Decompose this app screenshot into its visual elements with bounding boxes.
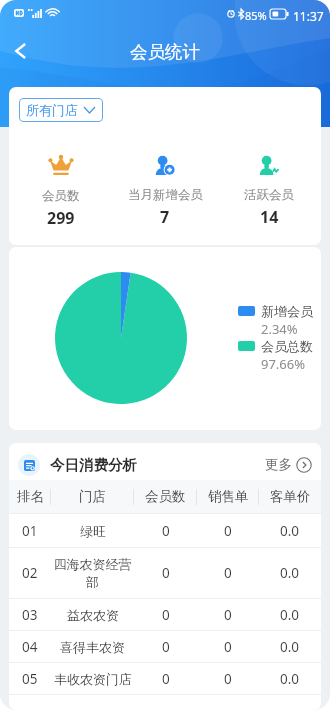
staticText: 2.34% — [261, 320, 298, 338]
staticText: 门店 — [79, 488, 106, 505]
button[interactable]: 当月新增会员 — [113, 155, 217, 228]
staticText: 喜得丰农资 — [60, 639, 125, 655]
staticText: 0 — [162, 606, 170, 624]
staticText: 04 — [22, 638, 38, 656]
button[interactable]: 04 — [9, 631, 321, 662]
staticText: 0 — [162, 670, 170, 688]
staticText: 0.0 — [280, 564, 300, 582]
button[interactable]: 会员数 — [9, 155, 113, 229]
staticText: 活跃会员 — [244, 187, 294, 203]
staticText: 0.0 — [280, 522, 300, 540]
staticText: 0 — [162, 638, 170, 656]
button[interactable]: 01 — [9, 514, 321, 547]
button[interactable]: 活跃会员 — [217, 155, 321, 228]
staticText: 0 — [224, 670, 232, 688]
staticText: 01 — [22, 522, 38, 540]
staticText: 0 — [224, 564, 232, 582]
staticText: 四海农资经营部 — [52, 556, 133, 591]
staticText: 0 — [224, 606, 232, 624]
staticText: 会员统计 — [130, 41, 200, 63]
staticText: 03 — [22, 606, 38, 624]
staticText: 新增会员 — [261, 303, 313, 319]
staticText: 14 — [260, 206, 279, 228]
button[interactable]: Back — [0, 29, 40, 69]
button[interactable]: 02 — [9, 548, 321, 598]
staticText: 更多 — [265, 456, 292, 473]
staticText: 会员数 — [42, 188, 80, 204]
button[interactable]: 05 — [9, 663, 321, 694]
staticText: 客单价 — [270, 488, 311, 505]
staticText: 0 — [162, 564, 170, 582]
staticText: 11:37 — [293, 8, 324, 24]
staticText: 0.0 — [280, 670, 300, 688]
staticText: 今日消费分析 — [50, 456, 137, 474]
staticText: 丰收农资门店 — [54, 671, 132, 687]
staticText: 299 — [47, 207, 75, 229]
staticText: 会员总数 — [261, 338, 313, 354]
staticText: 会员数 — [145, 488, 186, 505]
staticText: 排名 — [17, 488, 44, 505]
staticText: 0 — [224, 522, 232, 540]
staticText: 0.0 — [280, 606, 300, 624]
staticText: 益农农资 — [67, 607, 119, 623]
button[interactable]: 所有门店 — [19, 98, 103, 122]
staticText: 0 — [162, 522, 170, 540]
staticText: 0.0 — [280, 638, 300, 656]
staticText: 85% — [245, 8, 267, 23]
staticText: 97.66% — [261, 355, 306, 373]
staticText: 销售单 — [208, 488, 249, 505]
staticText: 所有门店 — [26, 102, 78, 118]
staticText: 绿旺 — [80, 523, 106, 539]
staticText: 7 — [160, 206, 170, 228]
staticText: 02 — [22, 564, 38, 582]
staticText: 0 — [224, 638, 232, 656]
button[interactable]: 03 — [9, 599, 321, 630]
staticText: 当月新增会员 — [128, 187, 203, 203]
button[interactable]: 更多 — [265, 452, 312, 477]
staticText: 05 — [22, 670, 38, 688]
